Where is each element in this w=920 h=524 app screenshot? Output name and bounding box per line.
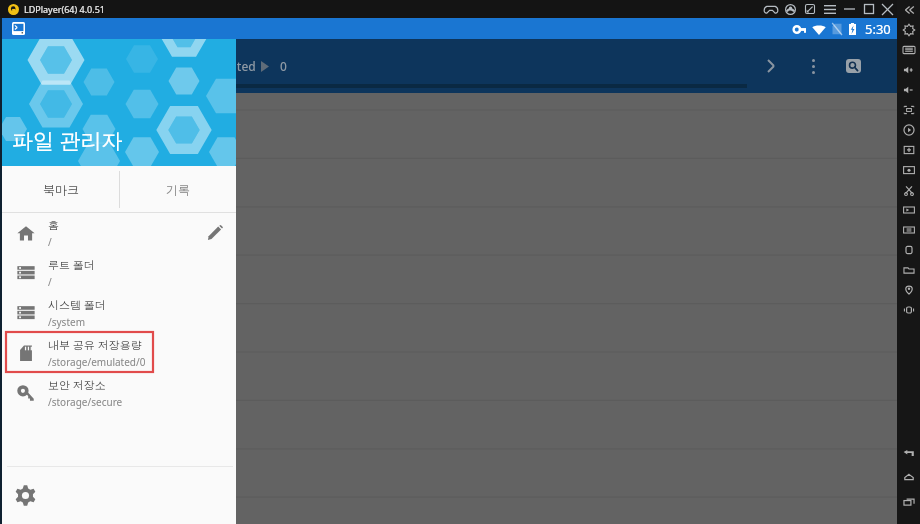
button[interactable]: Shared folder bbox=[897, 260, 920, 280]
button[interactable]: Rotate bbox=[897, 120, 920, 140]
staticText: 파일 관리자 bbox=[12, 126, 123, 155]
button[interactable]: Menu bbox=[820, 0, 840, 18]
staticText: 북마크 bbox=[43, 182, 79, 197]
staticText: /storage/secure bbox=[48, 395, 123, 409]
staticText: /system bbox=[48, 315, 85, 329]
staticText: 루트 폴더 bbox=[48, 257, 95, 272]
button[interactable]: Gamepad bbox=[761, 0, 780, 18]
button[interactable]: Home bbox=[897, 467, 920, 487]
button[interactable]: 루트 폴더 bbox=[2, 253, 236, 293]
button[interactable]: Install APK bbox=[897, 140, 920, 160]
staticText: 기록 bbox=[166, 182, 190, 197]
button[interactable]: Location bbox=[897, 280, 920, 300]
button[interactable]: 홈 bbox=[2, 213, 236, 253]
button[interactable]: Keyboard bbox=[897, 40, 920, 60]
staticText: 홈 bbox=[48, 218, 59, 232]
staticText: 보안 저장소 bbox=[48, 377, 106, 392]
button[interactable]: Screenshot bbox=[897, 160, 920, 180]
button[interactable]: Forward bbox=[757, 51, 785, 81]
button[interactable]: Search bbox=[846, 59, 861, 73]
button[interactable]: Multi instance bbox=[800, 0, 820, 18]
button[interactable]: 기록 bbox=[119, 166, 236, 212]
staticText: / bbox=[48, 275, 52, 289]
button[interactable]: Account bbox=[780, 0, 800, 18]
staticText: /storage/emulated/0 bbox=[48, 355, 146, 369]
button[interactable]: Back bbox=[897, 443, 920, 463]
button[interactable]: Edit bbox=[198, 216, 232, 250]
button[interactable]: More options bbox=[799, 51, 827, 81]
staticText: LDPlayer(64) 4.0.51 bbox=[24, 3, 105, 15]
staticText: ated bbox=[230, 58, 256, 74]
staticText: 시스템 폴더 bbox=[48, 297, 106, 312]
button[interactable]: Sync bbox=[897, 220, 920, 240]
staticText: 5:30 bbox=[865, 20, 891, 38]
button[interactable]: Shake bbox=[897, 240, 920, 260]
button[interactable]: Maximize bbox=[859, 0, 878, 18]
button[interactable]: 내부 공유 저장용량 bbox=[2, 333, 236, 373]
staticText: / bbox=[48, 235, 52, 249]
button[interactable]: Collapse bbox=[897, 0, 920, 20]
button[interactable]: Recents bbox=[897, 492, 920, 512]
button[interactable]: Settings bbox=[897, 20, 920, 40]
button[interactable]: 북마크 bbox=[2, 166, 119, 212]
staticText: 내부 공유 저장용량 bbox=[48, 337, 142, 352]
button[interactable]: Record bbox=[897, 200, 920, 220]
button[interactable]: Fullscreen bbox=[897, 100, 920, 120]
button[interactable]: 보안 저장소 bbox=[2, 373, 236, 413]
button[interactable]: Cut bbox=[897, 180, 920, 200]
button[interactable]: Close bbox=[878, 0, 897, 18]
button[interactable]: Minimize bbox=[840, 0, 859, 18]
button[interactable]: Volume down bbox=[897, 80, 920, 100]
button[interactable]: 시스템 폴더 bbox=[2, 293, 236, 333]
button[interactable]: Settings bbox=[2, 467, 236, 524]
staticText: 0 bbox=[280, 58, 287, 74]
button[interactable]: Vibrate bbox=[897, 300, 920, 320]
button[interactable]: Volume up bbox=[897, 60, 920, 80]
